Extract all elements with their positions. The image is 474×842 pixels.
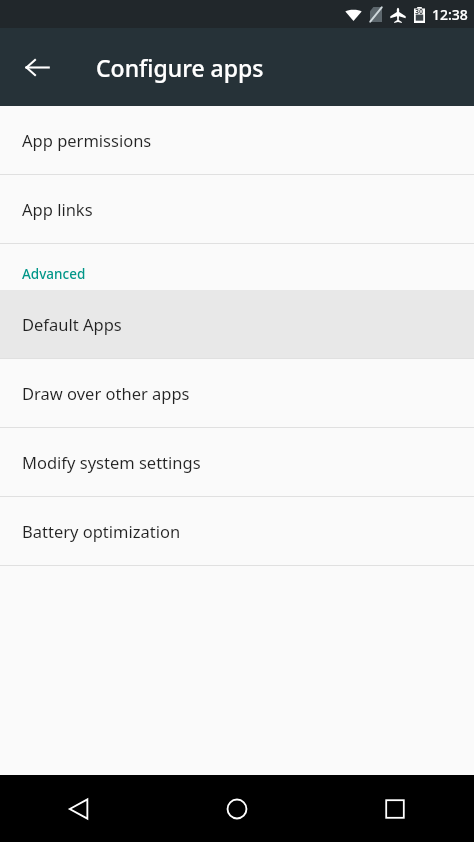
button[interactable]: App links xyxy=(0,175,474,243)
staticText: Modify system settings xyxy=(22,451,201,473)
staticText: App permissions xyxy=(22,129,152,151)
button[interactable]: Draw over other apps xyxy=(0,359,474,427)
staticText: Draw over other apps xyxy=(22,382,190,404)
button[interactable]: Recent apps xyxy=(316,775,474,842)
staticText: Default Apps xyxy=(22,313,122,335)
button[interactable]: Back xyxy=(9,39,65,95)
button[interactable]: App permissions xyxy=(0,106,474,174)
staticText: 12:38 xyxy=(432,5,468,24)
button[interactable]: Battery optimization xyxy=(0,497,474,565)
button[interactable]: Home xyxy=(158,775,316,842)
staticText: App links xyxy=(22,198,93,220)
button[interactable]: Back xyxy=(0,775,158,842)
button[interactable]: Default Apps xyxy=(0,290,474,358)
staticText: Advanced xyxy=(22,265,86,283)
button[interactable]: Modify system settings xyxy=(0,428,474,496)
staticText: Battery optimization xyxy=(22,520,181,542)
staticText: 30 xyxy=(415,7,424,17)
staticText: Configure apps xyxy=(96,52,264,83)
